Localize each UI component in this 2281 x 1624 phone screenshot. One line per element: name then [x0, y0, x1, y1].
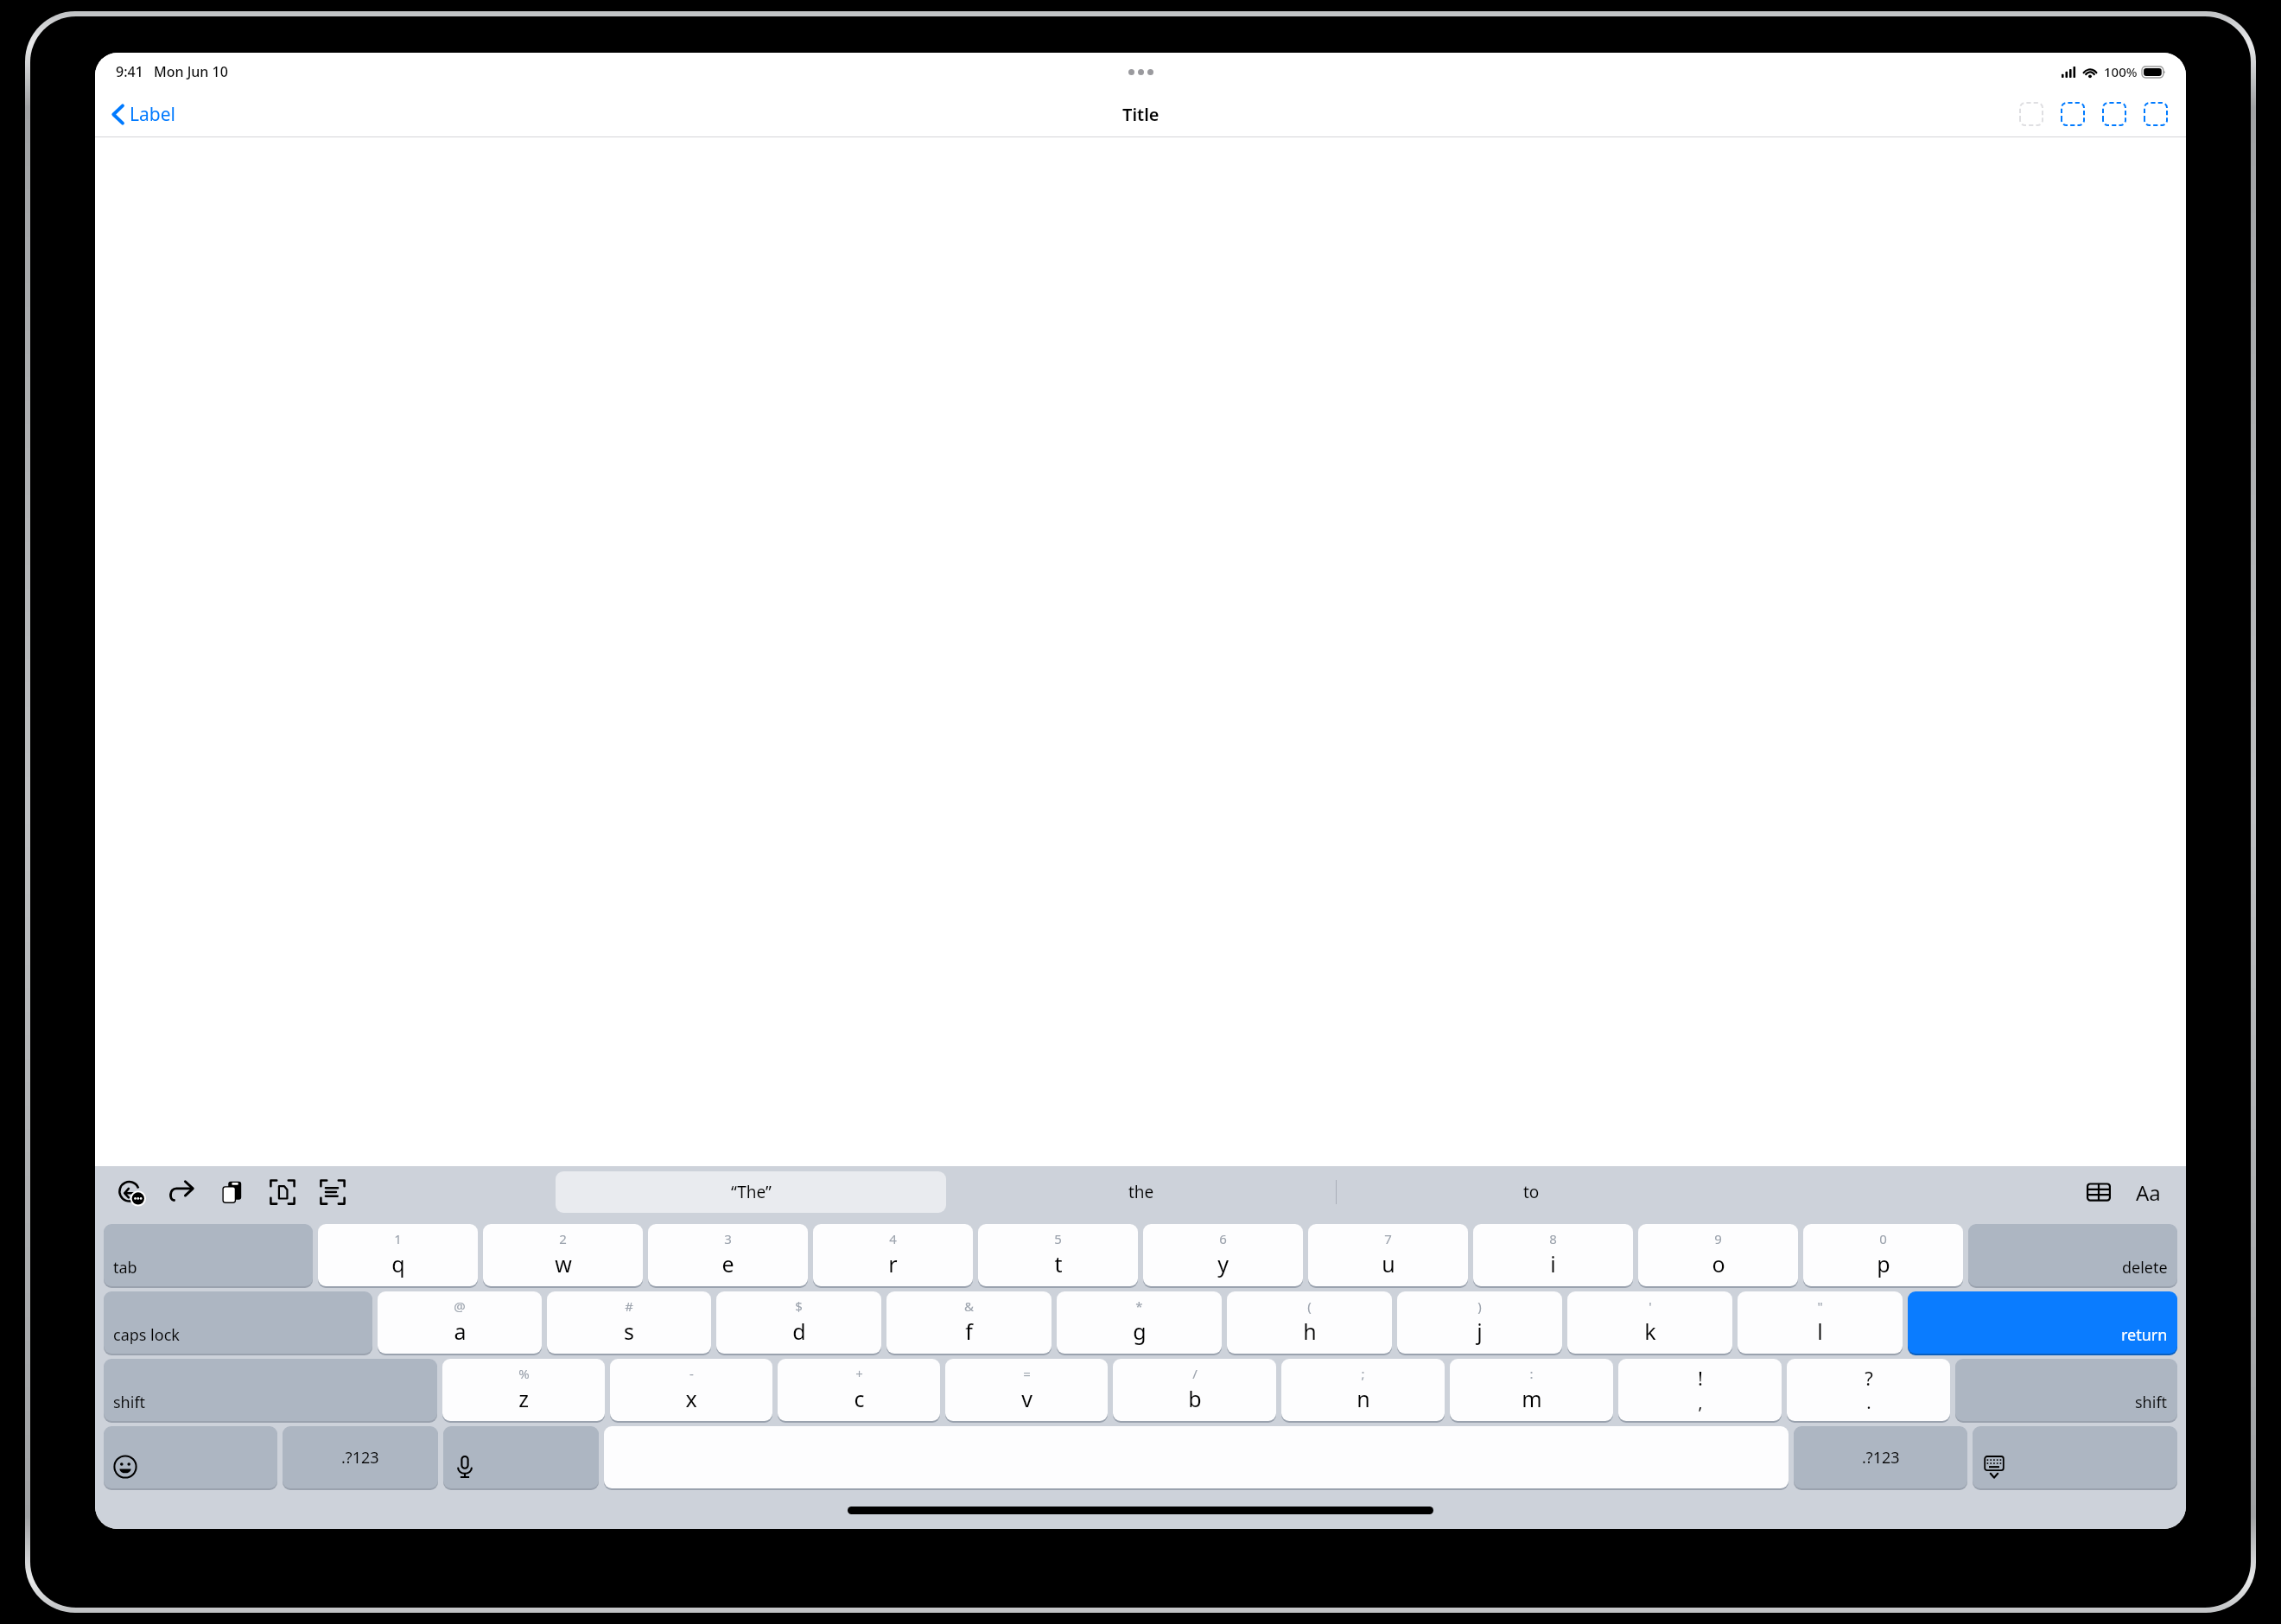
button[interactable]: “The” [556, 1171, 946, 1213]
staticText: delete [2122, 1257, 2168, 1278]
button[interactable]: 6 [1143, 1224, 1303, 1286]
button[interactable]: * [1057, 1291, 1222, 1354]
button[interactable]: + [778, 1359, 940, 1421]
staticText: e [721, 1249, 734, 1278]
staticText: * [1135, 1297, 1143, 1315]
staticText: t [1054, 1249, 1063, 1278]
button[interactable]: the [946, 1171, 1336, 1213]
staticText: ( [1307, 1297, 1312, 1315]
staticText: y [1217, 1249, 1229, 1278]
staticText: w [555, 1249, 572, 1278]
staticText: caps lock [113, 1324, 180, 1346]
button[interactable]: ; [1281, 1359, 1445, 1421]
button[interactable]: ' [1567, 1291, 1732, 1354]
button[interactable]: $ [716, 1291, 881, 1354]
staticText: / [1192, 1365, 1198, 1382]
button[interactable]: Emoji [104, 1426, 277, 1488]
staticText: 100% [2104, 63, 2138, 80]
staticText: Label [130, 102, 175, 127]
staticText: . [1866, 1391, 1871, 1413]
staticText: z [518, 1384, 529, 1413]
button[interactable]: 0 [1803, 1224, 1963, 1286]
button[interactable]: Scan document [268, 1177, 297, 1207]
button[interactable]: ? [1787, 1359, 1950, 1421]
button[interactable]: Placeholder action [2018, 101, 2044, 127]
staticText: 9 [1714, 1230, 1722, 1247]
button[interactable]: to [1337, 1171, 1726, 1213]
button[interactable]: 5 [978, 1224, 1138, 1286]
staticText: the [1128, 1181, 1154, 1203]
button[interactable]: & [886, 1291, 1052, 1354]
staticText: .?123 [341, 1447, 379, 1469]
button[interactable]: : [1450, 1359, 1613, 1421]
staticText: r [888, 1249, 898, 1278]
button[interactable]: Redo [168, 1177, 197, 1207]
staticText: ? [1865, 1365, 1873, 1391]
button[interactable]: ! [1618, 1359, 1782, 1421]
staticText: 4 [889, 1230, 897, 1247]
button[interactable]: Action 2 [2101, 101, 2127, 127]
staticText: 9:41 [116, 62, 143, 81]
button[interactable]: 4 [813, 1224, 973, 1286]
button[interactable]: return [1908, 1291, 2177, 1354]
staticText: p [1877, 1249, 1890, 1278]
button[interactable]: 2 [483, 1224, 643, 1286]
button[interactable]: 8 [1473, 1224, 1633, 1286]
staticText: .?123 [1862, 1447, 1900, 1469]
button[interactable]: - [610, 1359, 772, 1421]
button[interactable]: Dictation [443, 1426, 599, 1488]
staticText: c [854, 1384, 865, 1413]
staticText: v [1021, 1384, 1032, 1413]
button[interactable]: # [547, 1291, 711, 1354]
button[interactable]: / [1113, 1359, 1276, 1421]
button[interactable]: @ [378, 1291, 542, 1354]
button[interactable]: space [604, 1426, 1789, 1488]
button[interactable]: tab [104, 1224, 313, 1286]
button[interactable]: Hide keyboard [1973, 1426, 2177, 1488]
button[interactable]: Action 1 [2060, 101, 2086, 127]
staticText: to [1523, 1181, 1540, 1203]
button[interactable]: Undo [118, 1177, 147, 1207]
button[interactable]: 1 [318, 1224, 478, 1286]
button[interactable]: Aa [2132, 1177, 2163, 1208]
staticText: 6 [1219, 1230, 1227, 1247]
button[interactable]: Label [107, 98, 181, 130]
button[interactable]: 3 [648, 1224, 808, 1286]
staticText: o [1712, 1249, 1725, 1278]
staticText: n [1357, 1384, 1370, 1413]
button[interactable]: 7 [1308, 1224, 1468, 1286]
button[interactable]: % [442, 1359, 605, 1421]
button[interactable]: Insert table [2084, 1177, 2113, 1207]
button[interactable]: caps lock [104, 1291, 372, 1354]
button[interactable]: " [1738, 1291, 1903, 1354]
button[interactable]: Scan text [318, 1177, 347, 1207]
button[interactable]: delete [1968, 1224, 2177, 1286]
staticText: - [689, 1365, 694, 1382]
staticText: shift [113, 1392, 146, 1413]
staticText: f [965, 1316, 973, 1346]
staticText: m [1522, 1384, 1542, 1413]
button[interactable]: Paste [218, 1177, 247, 1207]
staticText: " [1817, 1297, 1823, 1315]
button[interactable]: ) [1397, 1291, 1562, 1354]
button[interactable]: = [945, 1359, 1108, 1421]
staticText: “The” [731, 1181, 772, 1203]
staticText: u [1382, 1249, 1395, 1278]
button[interactable]: Action 3 [2143, 101, 2169, 127]
button[interactable]: .?123 [283, 1426, 438, 1488]
staticText: q [391, 1249, 405, 1278]
staticText: ! [1698, 1365, 1703, 1391]
button[interactable]: .?123 [1794, 1426, 1967, 1488]
staticText: ' [1649, 1297, 1652, 1315]
staticText: shift [2135, 1392, 2168, 1413]
staticText: 1 [394, 1230, 402, 1247]
staticText: 0 [1879, 1230, 1887, 1247]
staticText: Title [1122, 103, 1160, 126]
staticText: : [1529, 1365, 1534, 1382]
button[interactable]: shift [1955, 1359, 2177, 1421]
button[interactable]: ( [1227, 1291, 1392, 1354]
button[interactable]: shift [104, 1359, 437, 1421]
staticText: x [685, 1384, 697, 1413]
staticText: 2 [559, 1230, 567, 1247]
button[interactable]: 9 [1638, 1224, 1798, 1286]
